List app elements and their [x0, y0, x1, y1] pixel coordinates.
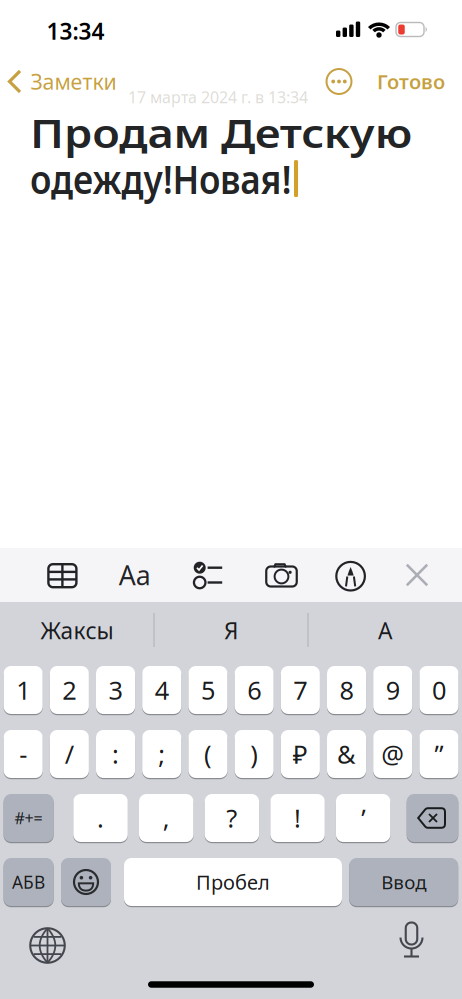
button[interactable]: Checklist — [180, 548, 236, 602]
staticText: 7 — [293, 673, 307, 707]
staticText: ₽ — [293, 737, 308, 771]
staticText: Ввод — [381, 870, 426, 894]
button[interactable]: Жаксы — [2, 606, 152, 654]
staticText: ; — [158, 737, 165, 771]
staticText: 9 — [386, 673, 400, 707]
staticText: А — [378, 615, 392, 645]
staticText: ! — [294, 801, 301, 835]
button[interactable]: Emoji — [61, 857, 111, 907]
staticText: 4 — [155, 673, 169, 707]
button[interactable]: Я — [156, 606, 306, 654]
button[interactable]: ( — [188, 729, 227, 779]
button[interactable]: ) — [235, 729, 274, 779]
button[interactable]: Готово — [377, 61, 457, 101]
staticText: ( — [204, 737, 212, 771]
staticText: / — [65, 737, 74, 771]
button[interactable]: А — [310, 606, 460, 654]
staticText: 3 — [108, 673, 122, 707]
button[interactable]: Dictate — [389, 920, 433, 964]
staticText: - — [19, 737, 27, 771]
button[interactable]: 6 — [235, 665, 274, 715]
button[interactable]: Format — [107, 548, 163, 602]
staticText: 0 — [432, 673, 446, 707]
staticText: #+= — [15, 807, 43, 829]
staticText: & — [337, 737, 356, 771]
button[interactable]: 9 — [373, 665, 412, 715]
button[interactable]: ₽ — [281, 729, 320, 779]
button[interactable]: Insert table — [34, 549, 90, 603]
staticText: Заметки — [30, 67, 116, 96]
button[interactable]: 8 — [327, 665, 366, 715]
button[interactable]: : — [96, 729, 135, 779]
button[interactable]: Ввод — [349, 857, 458, 907]
staticText: Aa — [119, 557, 151, 593]
staticText: Готово — [377, 68, 445, 95]
button[interactable]: - — [4, 729, 43, 779]
staticText: 8 — [340, 673, 354, 707]
staticText: 2 — [62, 673, 76, 707]
staticText: одежду!Новая! — [30, 152, 327, 205]
staticText: 17 марта 2024 г. в 13:34 — [128, 86, 308, 108]
button[interactable]: 5 — [188, 665, 227, 715]
staticText: . — [97, 801, 104, 835]
button[interactable]: 7 — [281, 665, 320, 715]
button[interactable]: @ — [373, 729, 412, 779]
button[interactable]: 1 — [4, 665, 43, 715]
button[interactable]: & — [327, 729, 366, 779]
staticText: Продам Детскую — [30, 106, 368, 159]
staticText: ’ — [361, 801, 365, 835]
button[interactable]: АБВ — [4, 857, 54, 907]
button[interactable]: Back — [7, 61, 147, 101]
button[interactable]: Next keyboard — [25, 923, 69, 967]
button[interactable]: ” — [419, 729, 458, 779]
button[interactable]: More — [322, 64, 356, 98]
button[interactable]: Delete — [407, 793, 458, 843]
staticText: 5 — [201, 673, 215, 707]
button[interactable]: . — [73, 793, 128, 843]
button[interactable]: 2 — [50, 665, 89, 715]
staticText: Жаксы — [40, 615, 113, 645]
button[interactable]: ; — [142, 729, 181, 779]
staticText: @ — [381, 737, 404, 771]
staticText: ? — [226, 801, 237, 835]
staticText: 1 — [16, 673, 30, 707]
staticText: Я — [224, 615, 238, 645]
staticText: 6 — [247, 673, 261, 707]
button[interactable]: / — [50, 729, 89, 779]
button[interactable]: Markup — [323, 549, 379, 603]
staticText: : — [112, 737, 119, 771]
staticText: Пробел — [196, 869, 270, 895]
button[interactable]: Close toolbar — [395, 553, 439, 597]
button[interactable]: Пробел — [124, 857, 342, 907]
button[interactable]: #+= — [4, 793, 54, 843]
button[interactable]: 4 — [142, 665, 181, 715]
staticText: , — [163, 801, 170, 835]
staticText: 13:34 — [46, 16, 104, 46]
button[interactable]: 3 — [96, 665, 135, 715]
button[interactable]: , — [139, 793, 193, 843]
button[interactable]: ! — [270, 793, 325, 843]
staticText: АБВ — [12, 870, 45, 893]
button[interactable]: ? — [205, 793, 259, 843]
staticText: ” — [434, 737, 443, 771]
staticText: ) — [250, 737, 258, 771]
button[interactable]: 0 — [419, 665, 458, 715]
button[interactable]: Insert photo — [253, 549, 309, 603]
button[interactable]: ’ — [336, 793, 390, 843]
